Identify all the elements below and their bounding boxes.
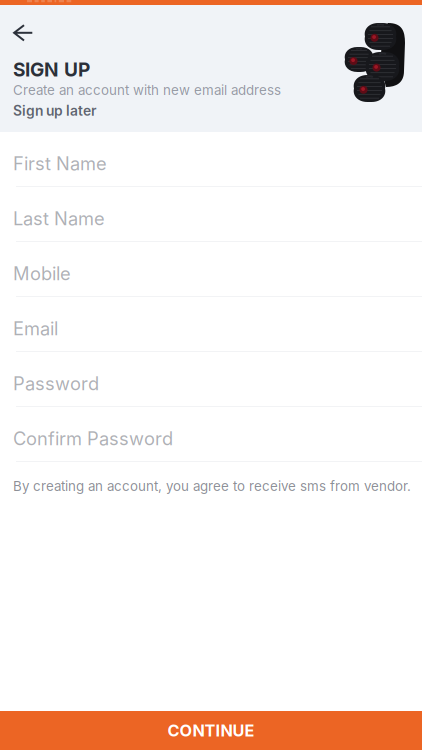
staticText: Sign up later [13, 102, 97, 119]
staticText: Mobile [13, 262, 71, 284]
button[interactable]: CONTINUE [0, 711, 422, 750]
staticText: CONTINUE [167, 721, 254, 740]
staticText: Confirm Password [13, 427, 173, 449]
staticText: Password [13, 372, 99, 394]
staticText: By creating an account, you agree to rec… [13, 478, 411, 494]
staticText: Email [13, 317, 58, 339]
staticText: Create an account with new email address [13, 82, 281, 98]
button[interactable]: Sign up later [0, 98, 109, 123]
staticText: SIGN UP [13, 58, 90, 81]
staticText: Last Name [13, 207, 105, 229]
button[interactable]: Back [0, 5, 47, 52]
staticText: First Name [13, 152, 107, 174]
